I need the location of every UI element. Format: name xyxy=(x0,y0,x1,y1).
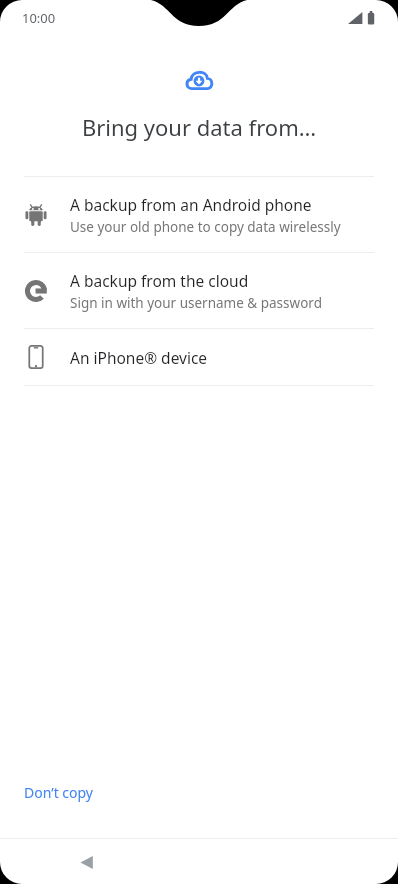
staticText: A backup from an Android phone xyxy=(70,194,312,215)
staticText: Don’t copy xyxy=(24,783,94,802)
button[interactable]: An iPhone® device xyxy=(0,329,398,385)
staticText: Use your old phone to copy data wireless… xyxy=(70,218,341,236)
button[interactable]: A backup from the cloud xyxy=(0,253,398,328)
staticText: Sign in with your username & password xyxy=(70,294,322,312)
staticText: 10:00 xyxy=(22,9,56,27)
staticText: Bring your data from… xyxy=(0,112,398,142)
staticText: A backup from the cloud xyxy=(70,270,249,291)
button[interactable]: Back xyxy=(64,840,108,884)
staticText: An iPhone® device xyxy=(70,347,208,368)
button[interactable]: Don’t copy xyxy=(0,773,118,812)
button[interactable]: A backup from an Android phone xyxy=(0,177,398,252)
